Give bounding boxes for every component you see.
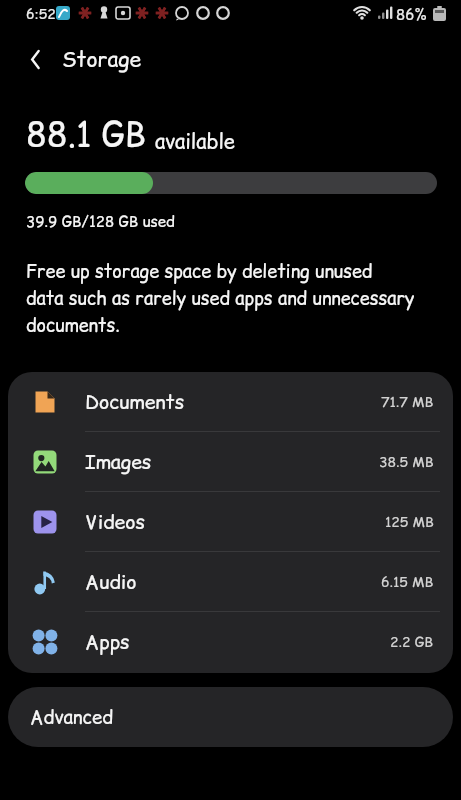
staticText: 71.7 MB [381,392,434,412]
staticText: Documents [85,388,185,415]
staticText: 88.1 GB [26,110,146,157]
staticText: 6.15 MB [381,572,434,592]
staticText: Apps [85,628,130,655]
staticText: Audio [85,568,137,595]
staticText: 38.5 MB [379,452,434,472]
staticText: Free up storage space by deleting unused… [26,259,415,339]
staticText: 39.9 GB/128 GB used [26,211,175,232]
staticText: Advanced [30,704,114,730]
staticText: 125 MB [385,512,434,532]
staticText: Images [85,448,152,475]
staticText: available [155,128,235,156]
staticText: Storage [62,45,141,74]
staticText: 2.2 GB [390,632,434,652]
staticText: Videos [85,508,146,535]
staticText: 6:52 [26,4,56,24]
staticText: 86% [396,4,427,25]
